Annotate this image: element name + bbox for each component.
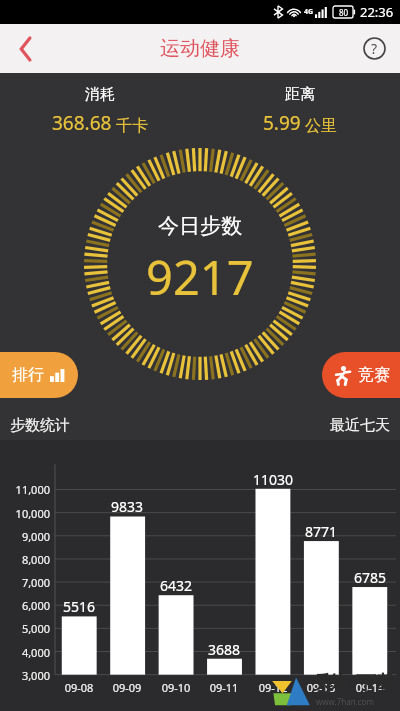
staticText: 3688 [200,640,248,659]
staticText: 7,000 [0,575,50,590]
staticText: 5516 [55,597,103,616]
staticText: 千卡 [116,116,148,136]
staticText: 6432 [152,576,200,595]
staticText: 80 [339,7,349,18]
staticText: 最近七天 [330,416,390,435]
button[interactable]: 消耗 [0,85,200,136]
button[interactable]: 最近七天 [330,416,390,435]
staticText: 09-12 [249,680,297,695]
staticText: 10,000 [0,506,50,521]
staticText: 9217 [146,245,254,309]
button[interactable]: Back [0,24,52,73]
staticText: 排行 [12,365,44,385]
staticText: 09-13 [297,680,345,695]
staticText: 消耗 [85,85,115,104]
staticText: 8771 [297,522,345,541]
staticText: 22:36 [360,3,394,21]
button[interactable]: Help [348,24,400,73]
staticText: 步数统计 [10,416,70,435]
staticText: 竞赛 [358,365,390,385]
staticText: 4,000 [0,645,50,660]
staticText: 6,000 [0,598,50,613]
staticText: 6785 [346,568,394,587]
staticText: 09-14 [346,680,394,695]
staticText: 公里 [305,116,337,136]
staticText: 09-08 [55,680,103,695]
staticText: ? [371,39,378,58]
button[interactable]: 排行 [0,352,78,398]
button[interactable]: 距离 [200,85,400,136]
staticText: 09-10 [152,680,200,695]
staticText: 368.68 [52,110,112,136]
staticText: 9,000 [0,529,50,544]
staticText: 09-09 [103,680,151,695]
staticText: 4G [304,7,314,17]
staticText: 5.99 [263,110,301,136]
staticText: 彩虹下载 [316,671,396,696]
staticText: 运动健康 [160,36,240,61]
staticText: 距离 [285,85,315,104]
button[interactable]: 竞赛 [322,352,400,398]
staticText: 8,000 [0,552,50,567]
staticText: 3,000 [0,668,50,683]
staticText: 09-11 [200,680,248,695]
staticText: www.7han.com [316,696,374,707]
staticText: 5,000 [0,621,50,636]
staticText: 11,000 [0,482,50,497]
staticText: 11030 [249,470,297,489]
staticText: 9833 [103,497,151,516]
staticText: 今日步数 [158,213,242,239]
